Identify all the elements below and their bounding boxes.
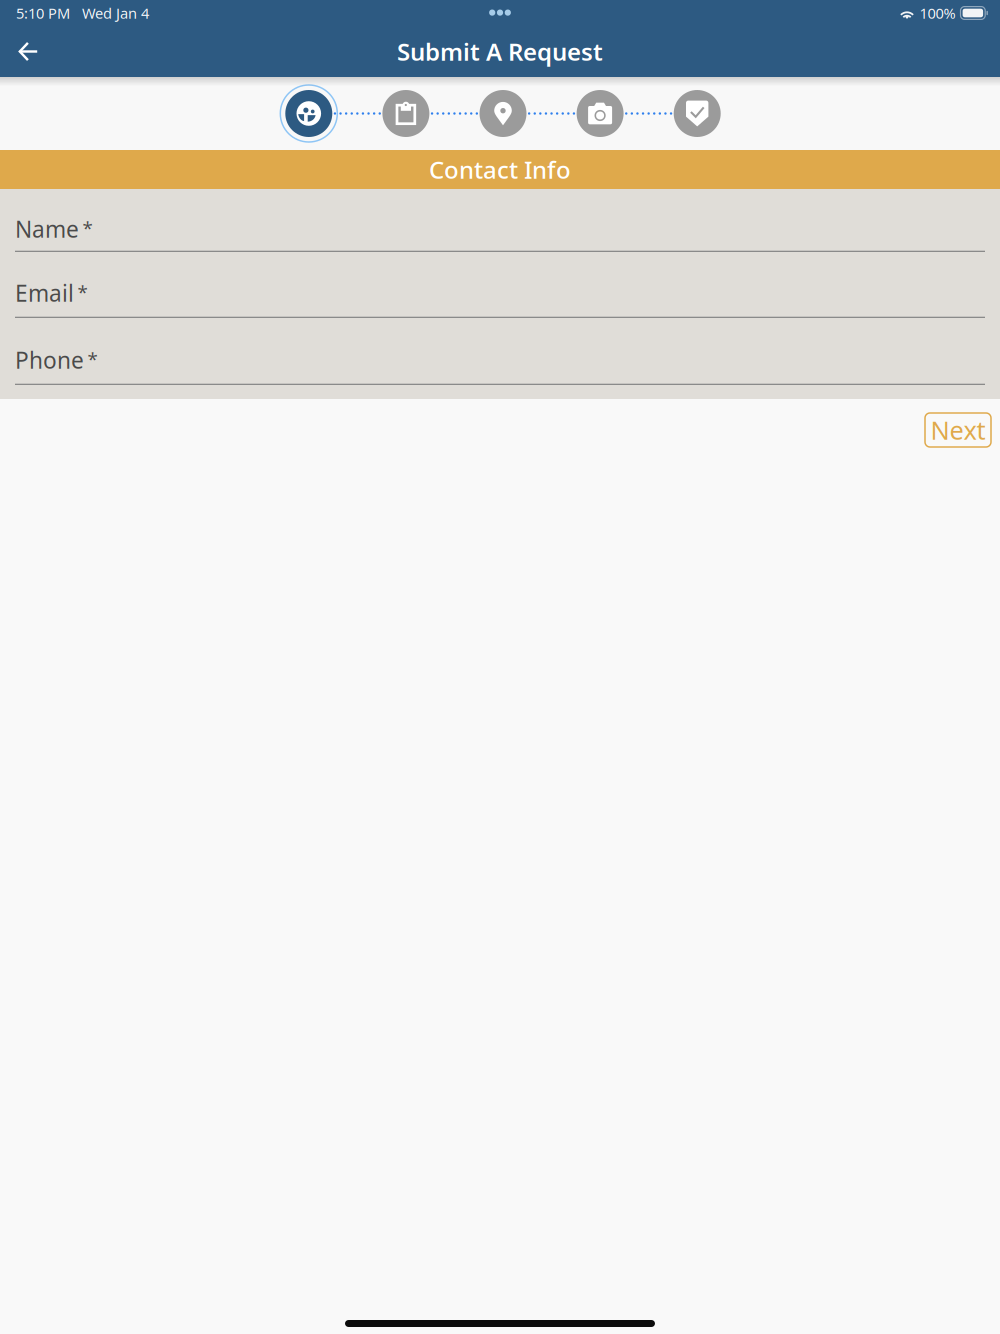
staticText: Email [15, 278, 74, 308]
staticText: Phone [15, 345, 84, 375]
staticText: * [82, 215, 92, 240]
staticText: * [87, 346, 97, 371]
staticText: * [77, 279, 87, 304]
staticText: Contact Info [429, 154, 571, 185]
staticText: Name [15, 214, 79, 244]
staticText: Next [930, 413, 985, 447]
staticText: Submit A Request [397, 36, 603, 67]
staticText: Wed Jan 4 [70, 3, 149, 23]
staticText: 100% [919, 3, 955, 23]
staticText: 5:10 PM [16, 3, 70, 23]
button[interactable]: Next [925, 413, 991, 447]
button[interactable]: Back [0, 26, 57, 77]
